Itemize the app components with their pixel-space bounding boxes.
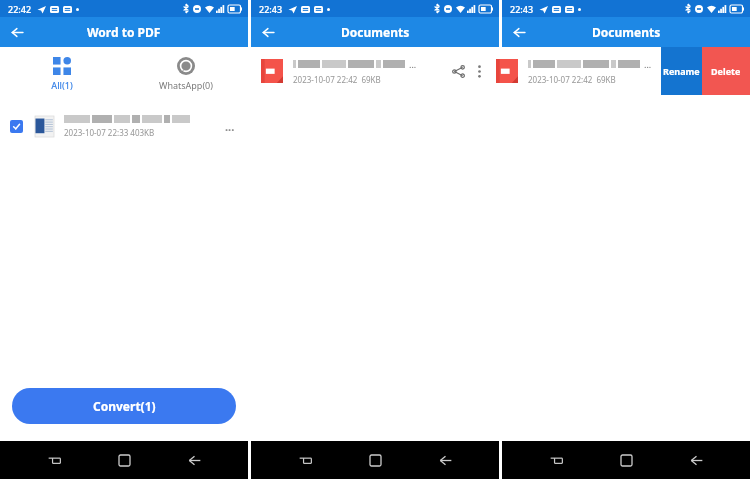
button[interactable]: Back xyxy=(4,19,30,45)
staticText: ... xyxy=(225,119,235,134)
button[interactable]: Selected xyxy=(10,120,23,133)
button[interactable]: Recents xyxy=(540,444,572,476)
button[interactable]: Home xyxy=(359,444,391,476)
staticText: Documents xyxy=(592,24,661,40)
staticText: WhatsApp(0) xyxy=(159,79,213,91)
button[interactable]: Share xyxy=(682,60,704,82)
staticText: ... xyxy=(409,58,417,70)
button[interactable]: ... xyxy=(486,47,734,95)
button[interactable]: Home xyxy=(108,444,140,476)
button[interactable]: Back xyxy=(178,444,210,476)
button[interactable]: Recents xyxy=(289,444,321,476)
button[interactable]: Home xyxy=(610,444,642,476)
staticText: Rename xyxy=(663,65,700,77)
button[interactable]: Share xyxy=(447,60,469,82)
button[interactable]: More options xyxy=(469,61,489,81)
button[interactable]: Convert(1) xyxy=(12,388,236,424)
button[interactable]: Recents xyxy=(38,444,70,476)
button[interactable]: Back xyxy=(680,444,712,476)
staticText: 2023-10-07 22:42 69KB xyxy=(293,74,381,85)
button[interactable]: More options xyxy=(222,118,238,134)
button[interactable]: ... xyxy=(251,47,499,95)
staticText: 2023-10-07 22:42 69KB xyxy=(528,74,616,85)
staticText: 22:43 xyxy=(259,3,283,15)
button[interactable]: Delete xyxy=(702,47,750,95)
button[interactable]: WhatsApp(0) xyxy=(124,53,248,95)
staticText: Delete xyxy=(711,65,741,77)
staticText: Documents xyxy=(341,24,410,40)
button[interactable]: Selected xyxy=(0,109,248,143)
button[interactable]: More options xyxy=(704,61,724,81)
staticText: 22:43 xyxy=(510,3,534,15)
staticText: 2023-10-07 22:33 403KB xyxy=(64,127,155,138)
button[interactable]: Rename xyxy=(661,47,702,95)
button[interactable]: Back xyxy=(506,19,532,45)
staticText: ... xyxy=(644,58,652,70)
staticText: 22:42 xyxy=(8,3,32,15)
button[interactable]: Back xyxy=(429,444,461,476)
staticText: All(1) xyxy=(51,79,73,91)
staticText: Convert(1) xyxy=(93,398,156,414)
staticText: Word to PDF xyxy=(87,24,161,40)
button[interactable]: Back xyxy=(255,19,281,45)
button[interactable]: All(1) xyxy=(0,53,124,95)
